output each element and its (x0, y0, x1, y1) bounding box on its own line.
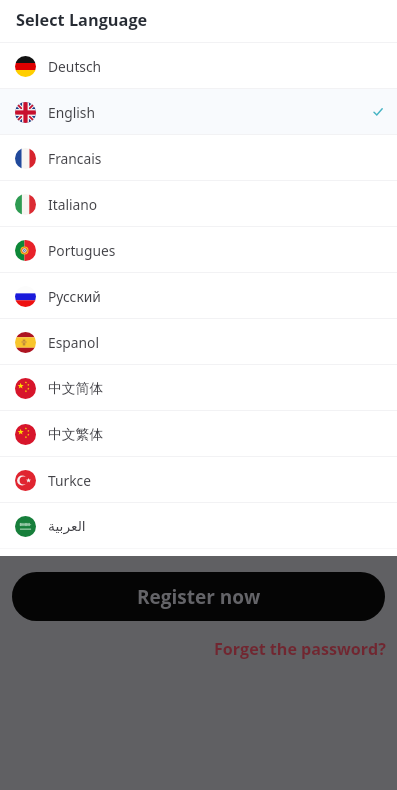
staticText: العربية (48, 518, 86, 534)
button[interactable]: Italiano (0, 181, 397, 227)
button[interactable]: Turkce (0, 457, 397, 503)
staticText: Turkce (48, 471, 91, 490)
staticText: Русский (48, 287, 101, 306)
staticText: Register now (137, 584, 261, 610)
staticText: Deutsch (48, 57, 102, 76)
button[interactable]: العربية (0, 503, 397, 549)
button[interactable]: Forget the password? (214, 638, 386, 660)
staticText: Espanol (48, 333, 99, 352)
button[interactable]: English (0, 89, 397, 135)
button[interactable]: Deutsch (0, 43, 397, 89)
button[interactable]: Portugues (0, 227, 397, 273)
staticText: Select Language (16, 9, 148, 31)
staticText: Francais (48, 149, 102, 168)
staticText: English (48, 103, 95, 122)
button[interactable]: 中文简体 (0, 365, 397, 411)
button[interactable]: Espanol (0, 319, 397, 365)
button[interactable]: Register now (12, 572, 385, 621)
staticText: 中文繁体 (48, 426, 104, 443)
other: Selected (373, 107, 383, 117)
staticText: 中文简体 (48, 380, 104, 397)
button[interactable]: Francais (0, 135, 397, 181)
button[interactable]: Русский (0, 273, 397, 319)
staticText: Portugues (48, 241, 116, 260)
button[interactable]: 中文繁体 (0, 411, 397, 457)
staticText: Italiano (48, 195, 98, 214)
